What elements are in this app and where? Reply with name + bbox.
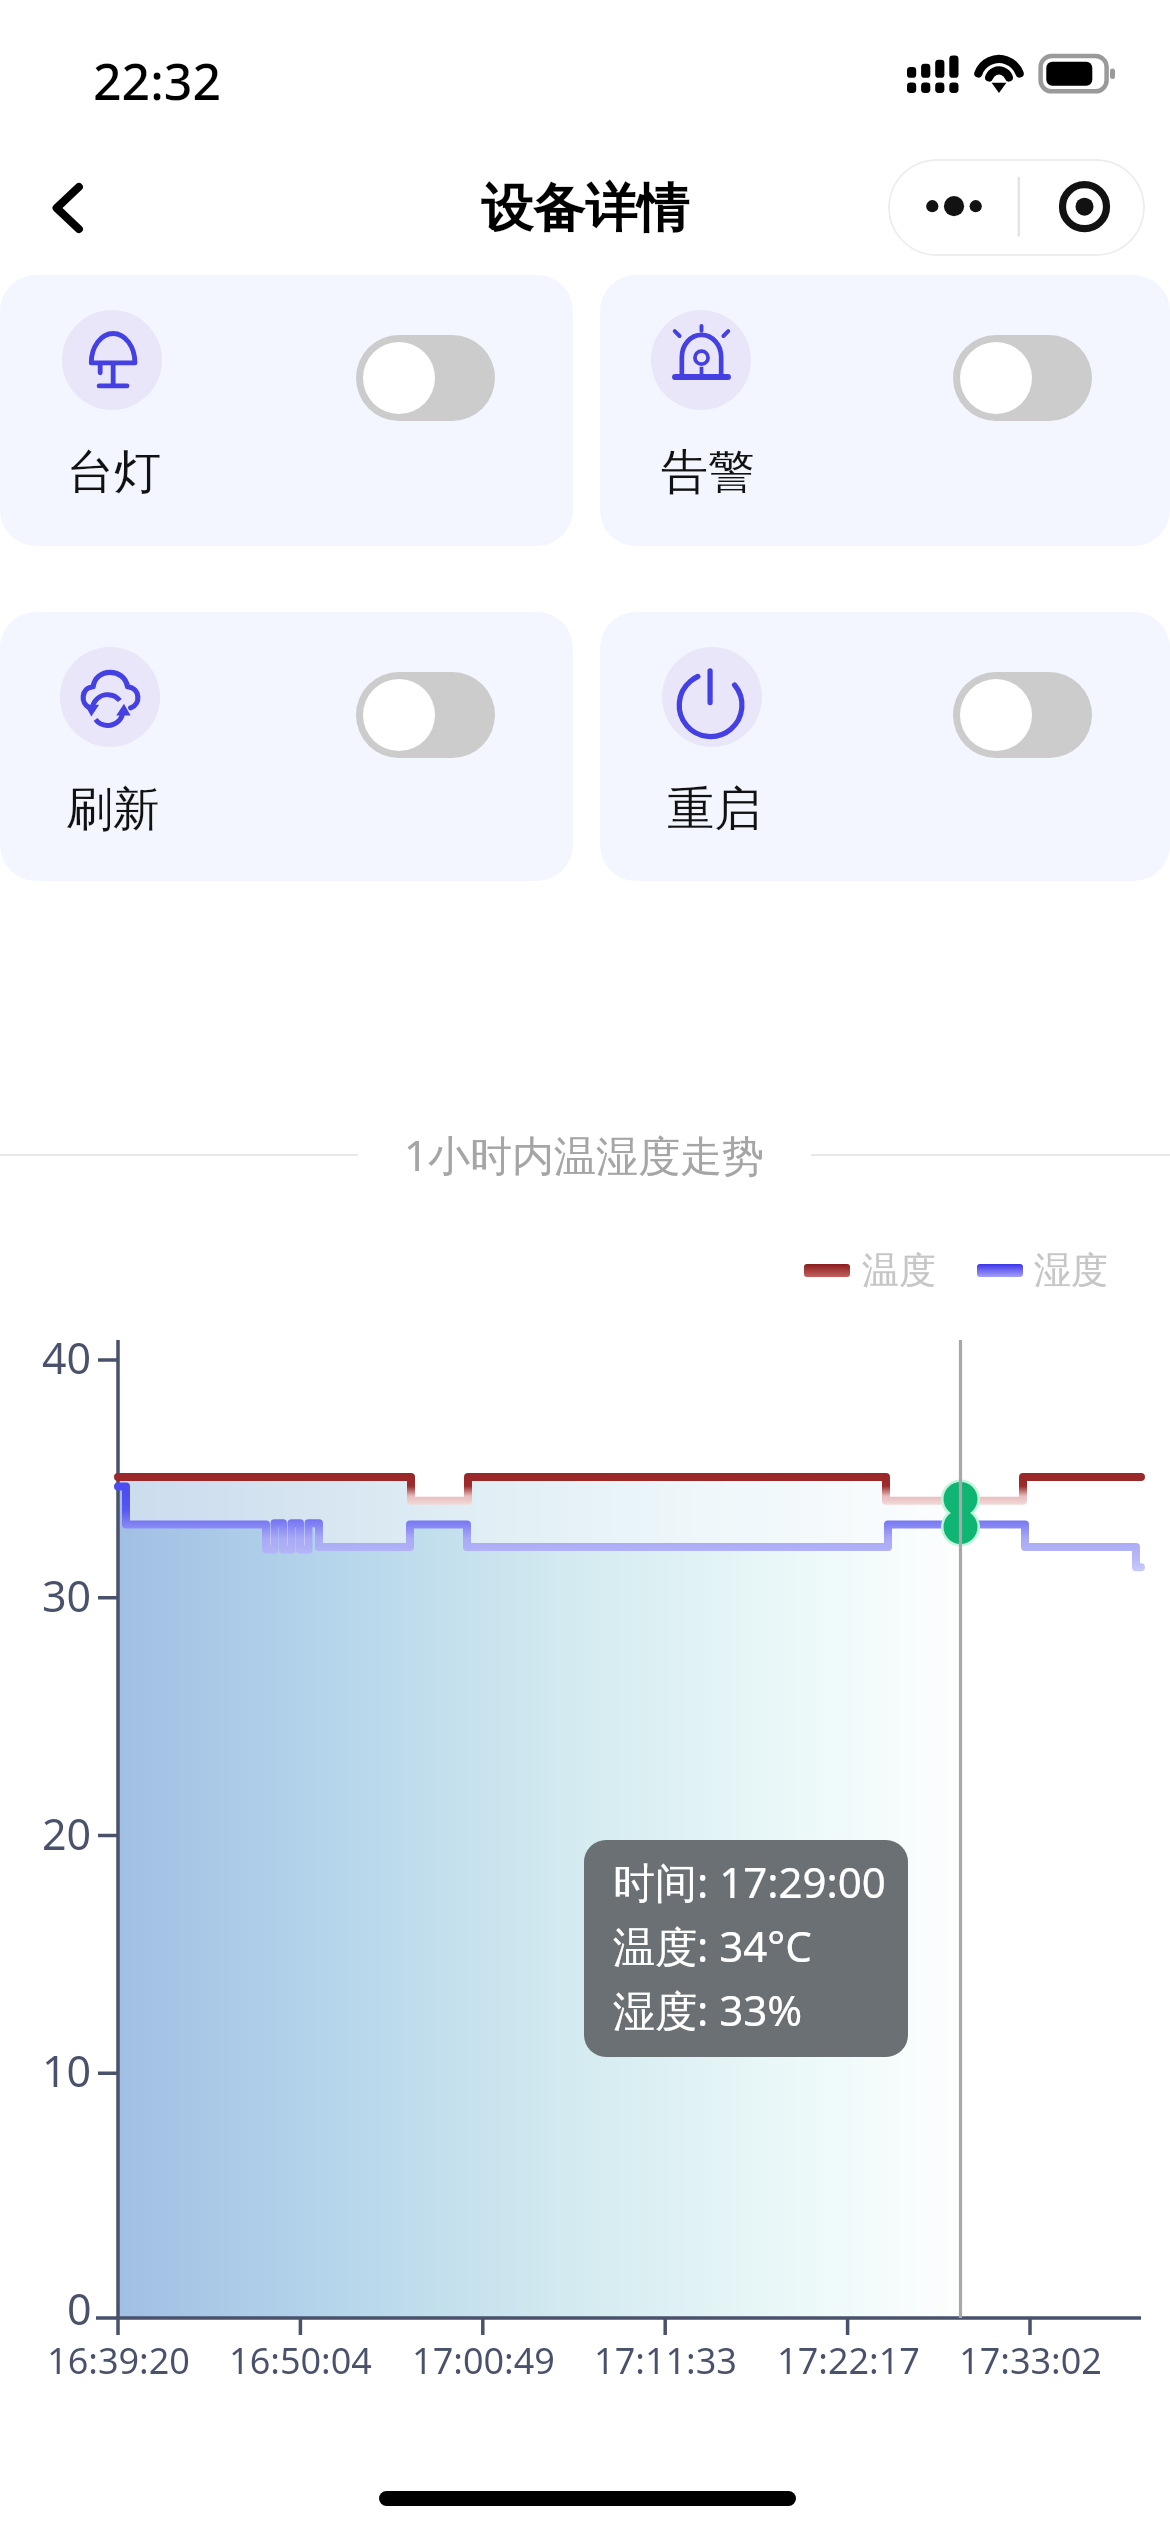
staticText: 温度: 34°C	[613, 1917, 812, 1974]
button[interactable]: Toggle 台灯	[0, 275, 573, 546]
button[interactable]: Menu and close	[888, 159, 1145, 256]
staticText: 40	[42, 1328, 92, 1387]
staticText: 时间: 17:29:00	[613, 1853, 886, 1910]
button[interactable]: Back	[16, 155, 121, 260]
staticText: 17:22:17	[777, 2336, 920, 2385]
staticText: 温度	[862, 1247, 936, 1294]
button[interactable]: Toggle 台灯	[356, 335, 495, 421]
staticText: 22:32	[93, 47, 221, 115]
staticText: 告警	[661, 443, 755, 502]
staticText: 湿度	[1034, 1247, 1108, 1294]
button[interactable]: Toggle 重启	[953, 672, 1092, 758]
staticText: 20	[42, 1804, 92, 1863]
staticText: 17:33:02	[959, 2336, 1102, 2385]
staticText: 台灯	[67, 443, 161, 502]
staticText: 30	[42, 1566, 92, 1625]
staticText: 16:50:04	[229, 2336, 372, 2385]
button[interactable]: Toggle 刷新	[356, 672, 495, 758]
staticText: 17:11:33	[594, 2336, 737, 2385]
staticText: 10	[42, 2041, 92, 2100]
button[interactable]: Toggle 告警	[953, 335, 1092, 421]
staticText: 刷新	[66, 780, 160, 839]
staticText: 17:00:49	[412, 2336, 555, 2385]
staticText: 设备详情	[481, 176, 689, 242]
button[interactable]: Toggle 告警	[600, 275, 1170, 546]
staticText: 0	[67, 2279, 92, 2338]
staticText: 湿度: 33%	[613, 1981, 803, 2038]
button[interactable]: Toggle 重启	[600, 612, 1170, 881]
staticText: 16:39:20	[47, 2336, 190, 2385]
staticText: 重启	[667, 780, 761, 839]
staticText: 1小时内温湿度走势	[404, 1126, 765, 1183]
button[interactable]: Toggle 刷新	[0, 612, 573, 881]
